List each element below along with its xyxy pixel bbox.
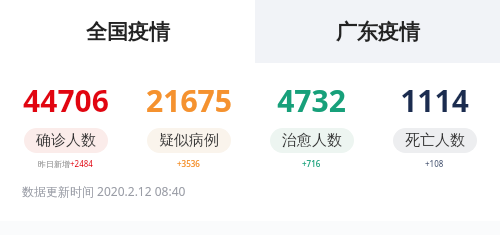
staticText: 广东疫情	[336, 19, 420, 45]
staticText: +2484	[70, 158, 93, 169]
staticText: +3536	[177, 158, 200, 169]
staticText: 治愈人数	[282, 131, 342, 150]
button[interactable]: 全国疫情	[0, 0, 255, 63]
button[interactable]: 广东疫情	[255, 0, 500, 63]
staticText: 4732	[277, 80, 346, 121]
staticText: 疑似病例	[159, 131, 219, 150]
button[interactable]: 确诊人数	[24, 128, 108, 153]
staticText: +716	[302, 158, 321, 169]
button[interactable]: 治愈人数	[270, 128, 354, 153]
button[interactable]: 疑似病例	[147, 128, 231, 153]
staticText: 确诊人数	[36, 131, 96, 150]
staticText: 21675	[146, 80, 232, 121]
staticText: 昨日新增	[38, 159, 70, 169]
staticText: 1114	[400, 80, 469, 121]
staticText: +108	[425, 158, 444, 169]
button[interactable]: 死亡人数	[393, 128, 477, 153]
staticText: 死亡人数	[405, 131, 465, 150]
staticText: 全国疫情	[86, 19, 170, 45]
staticText: 44706	[23, 80, 109, 121]
staticText: 数据更新时间 2020.2.12 08:40	[22, 183, 186, 199]
